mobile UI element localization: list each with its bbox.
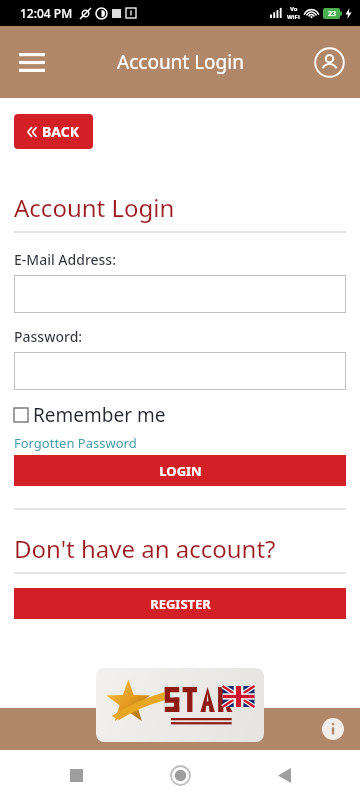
staticText: Account Login <box>117 49 244 75</box>
staticText: 23 <box>328 9 337 19</box>
staticText: Account Login <box>14 191 175 224</box>
staticText: 12:04 PM <box>20 5 73 21</box>
button[interactable]: Information <box>320 716 346 742</box>
button[interactable]: Forgotten Password <box>14 434 137 452</box>
button[interactable] <box>14 352 346 390</box>
staticText: Vo <box>290 5 298 13</box>
button[interactable]: REGISTER <box>14 588 346 619</box>
button[interactable]: Remember me <box>14 402 166 428</box>
button[interactable]: Open navigation menu <box>8 38 56 86</box>
button[interactable]: LOGIN <box>14 455 346 486</box>
button[interactable]: Back <box>264 755 304 795</box>
staticText: REGISTER <box>150 595 211 613</box>
button[interactable] <box>14 275 346 313</box>
button[interactable]: Recent apps <box>56 755 96 795</box>
button[interactable]: Account <box>306 39 352 85</box>
staticText: Password: <box>14 327 83 346</box>
staticText: WiFi <box>287 13 300 21</box>
staticText: E-Mail Address: <box>14 250 116 269</box>
staticText: BACK <box>42 122 80 141</box>
button[interactable]: BACK <box>14 114 93 149</box>
staticText: Remember me <box>33 402 166 428</box>
staticText: Don't have an account? <box>14 532 276 565</box>
button[interactable]: Home <box>160 755 200 795</box>
staticText: LOGIN <box>159 462 202 480</box>
button[interactable]: Star Kebab & Pizza logo <box>96 668 264 742</box>
